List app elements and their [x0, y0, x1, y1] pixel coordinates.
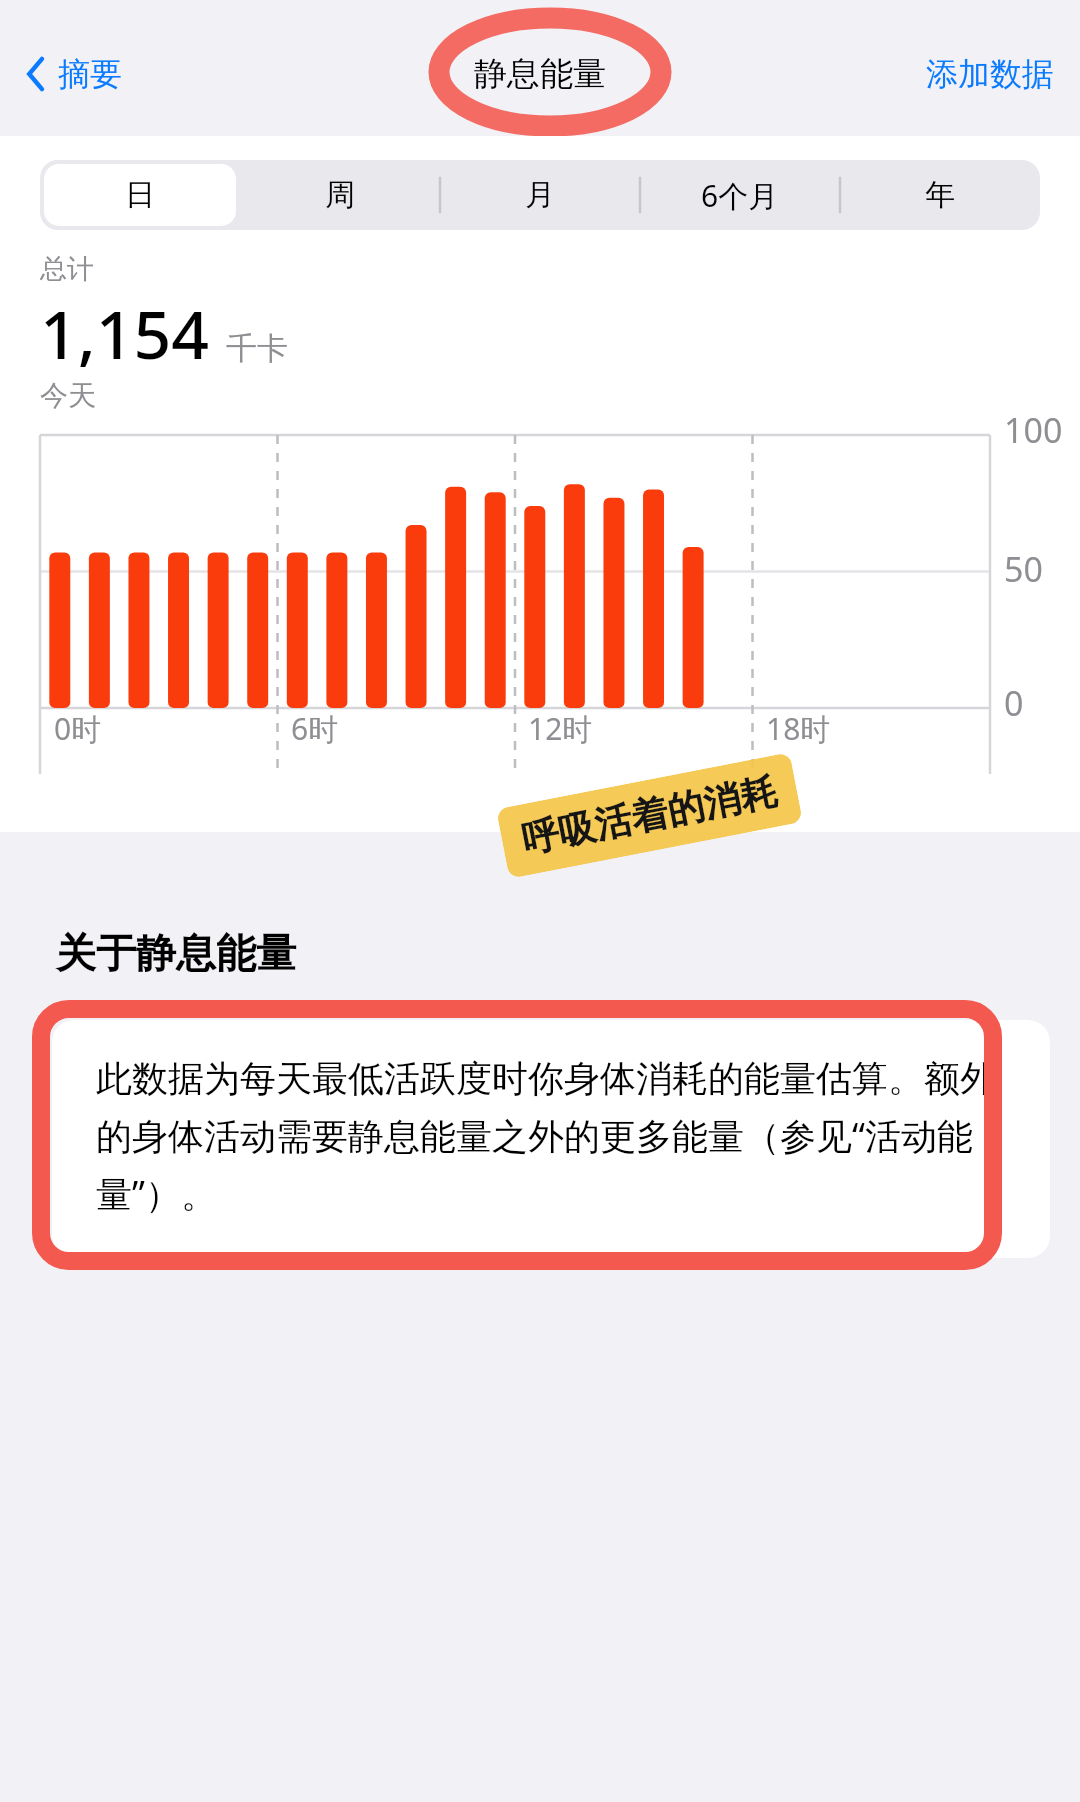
staticText: 周 — [325, 176, 355, 214]
button[interactable]: 周 — [240, 160, 440, 230]
staticText: 静息能量 — [474, 53, 606, 95]
staticText: 18时 — [766, 708, 831, 749]
staticText: 月 — [525, 176, 555, 214]
button[interactable]: 添加数据 — [920, 46, 1060, 102]
staticText: 摘要 — [58, 54, 122, 94]
staticText: 千卡 — [226, 329, 288, 368]
staticText: 总计 — [40, 252, 94, 286]
button[interactable]: 此数据为每天最低活跃度时你身体消耗的能量估算。额外的身体活动需要静息能量之外的更… — [96, 1056, 1016, 1218]
staticText: 12时 — [528, 708, 593, 749]
button[interactable]: 月 — [440, 160, 640, 230]
staticText: 0时 — [54, 708, 102, 749]
staticText: 6个月 — [701, 175, 779, 216]
button[interactable]: 日 — [40, 160, 240, 230]
staticText: 日 — [125, 176, 155, 214]
staticText: 添加数据 — [926, 54, 1054, 94]
staticText: 今天 — [40, 378, 96, 413]
staticText: 0 — [1004, 680, 1024, 726]
staticText: 关于静息能量 — [56, 928, 296, 978]
staticText: 年 — [925, 176, 955, 214]
staticText: 6时 — [291, 708, 339, 749]
staticText: 此数据为每天最低活跃度时你身体消耗的能量估算。额外的身体活动需要静息能量之外的更… — [96, 1056, 1016, 1218]
button[interactable]: 摘要 — [20, 46, 128, 102]
staticText: 100 — [1004, 407, 1063, 453]
staticText: 呼吸活着的消耗 — [518, 768, 781, 863]
staticText: 1,154 — [40, 288, 210, 378]
staticText: 50 — [1004, 546, 1043, 592]
button[interactable]: 年 — [840, 160, 1040, 230]
button[interactable]: 6个月 — [640, 160, 840, 230]
